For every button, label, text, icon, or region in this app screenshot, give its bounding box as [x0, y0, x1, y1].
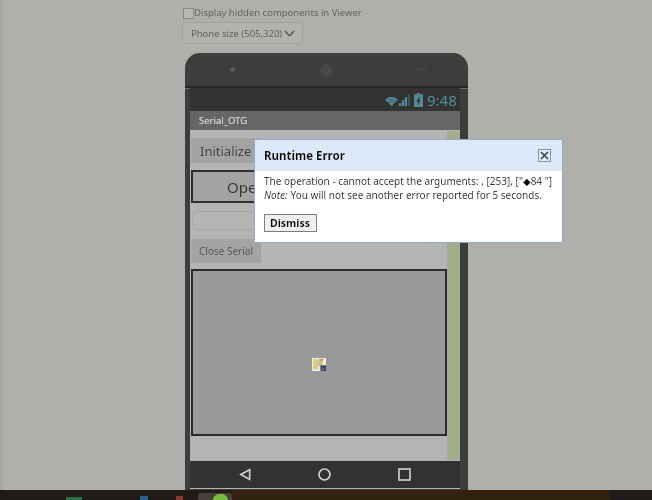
button[interactable]: Home: [310, 461, 338, 488]
staticText: Close Serial: [199, 244, 254, 258]
button[interactable]: Phone size (505,320): [182, 22, 303, 44]
staticText: Open: [227, 177, 266, 197]
staticText: Phone size (505,320): [191, 27, 283, 40]
button[interactable]: Open: [191, 170, 301, 203]
button[interactable]: [192, 211, 294, 230]
staticText: You will not see another error reported …: [288, 188, 542, 202]
staticText: The operation - cannot accept the argume…: [264, 174, 553, 188]
staticText: Serial_OTG: [199, 114, 248, 127]
staticText: Dismiss: [270, 216, 311, 230]
staticText: 9:48: [427, 90, 457, 110]
button[interactable]: Close Serial: [191, 239, 261, 263]
button[interactable]: Back: [231, 461, 259, 488]
staticText: Initialize: [200, 142, 252, 160]
staticText: Note:: [264, 188, 288, 202]
button[interactable]: Initialize: [191, 138, 261, 163]
button[interactable]: Display hidden components checkbox: [183, 8, 194, 19]
button[interactable]: Dismiss: [264, 214, 317, 232]
button[interactable]: Display hidden components in Viewer: [194, 6, 362, 19]
staticText: Runtime Error: [264, 148, 345, 164]
button[interactable]: Close: [538, 149, 551, 162]
button[interactable]: Recents: [390, 461, 418, 488]
